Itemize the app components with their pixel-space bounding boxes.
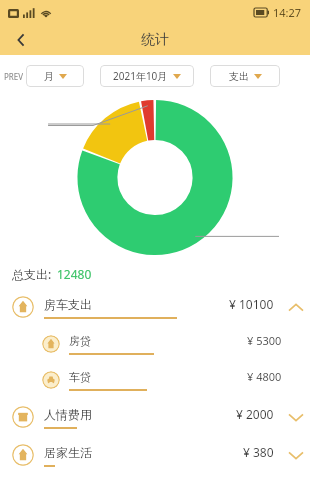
staticText: 房贷 xyxy=(69,334,91,348)
staticText: 房车支出 xyxy=(44,297,92,312)
button[interactable]: 车贷 xyxy=(0,362,310,398)
staticText: ¥ 4800 xyxy=(247,369,282,384)
button[interactable]: Collapse xyxy=(282,288,310,326)
staticText: 12480 xyxy=(57,266,92,282)
staticText: 月 xyxy=(44,70,54,83)
button[interactable]: 支出 xyxy=(210,65,280,87)
staticText: 人情费用 xyxy=(44,407,92,422)
staticText: 支出 xyxy=(229,70,249,83)
staticText: 居家生活 xyxy=(44,445,92,460)
button[interactable]: Expand xyxy=(282,436,310,474)
staticText: 2021年10月 xyxy=(113,69,168,83)
staticText: 14:27 xyxy=(273,5,302,20)
staticText: 车贷 xyxy=(69,370,91,384)
button[interactable]: 月 xyxy=(26,65,84,87)
staticText: 总支出: xyxy=(12,266,52,282)
staticText: ¥ 5300 xyxy=(247,333,282,348)
staticText: PREV xyxy=(4,71,24,82)
staticText: 统计 xyxy=(141,31,169,49)
staticText: ¥ 380 xyxy=(243,444,274,460)
button[interactable]: 人情费用 xyxy=(0,398,310,436)
button[interactable]: 居家生活 xyxy=(0,436,310,474)
staticText: ¥ 10100 xyxy=(229,296,274,312)
button[interactable]: 房贷 xyxy=(0,326,310,362)
button[interactable]: Back xyxy=(6,25,36,55)
button[interactable]: 房车支出 xyxy=(0,288,310,326)
staticText: ¥ 2000 xyxy=(236,406,274,422)
button[interactable]: Expand xyxy=(282,398,310,436)
button[interactable]: 2021年10月 xyxy=(100,65,194,87)
